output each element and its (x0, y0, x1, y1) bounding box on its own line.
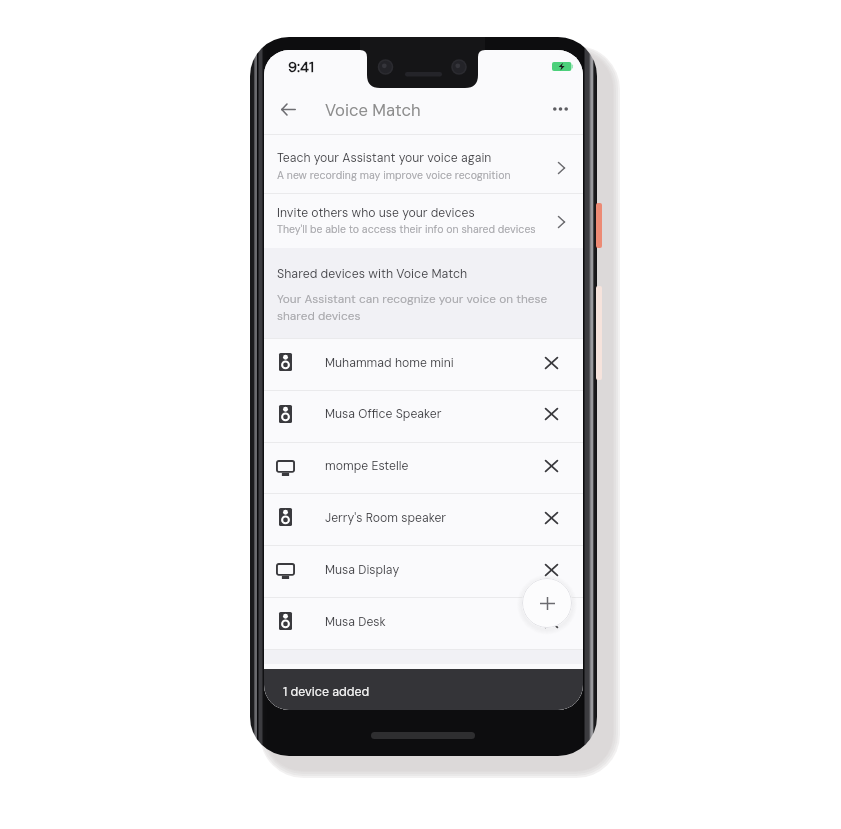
button[interactable]: Remove Musa Office Speaker (538, 401, 564, 427)
staticText: 1 device added (283, 684, 370, 700)
button[interactable] (264, 494, 583, 544)
staticText: Shared devices with Voice Match (277, 266, 468, 282)
staticText: Invite others who use your devices (277, 205, 475, 221)
staticText: Musa Office Speaker (325, 406, 442, 422)
staticText: Teach your Assistant your voice again (277, 150, 492, 166)
staticText: Voice Match (325, 100, 421, 122)
button[interactable] (264, 137, 583, 193)
button[interactable]: Add device (522, 578, 572, 628)
button[interactable]: Remove Jerry's Room speaker (538, 505, 564, 531)
button[interactable] (264, 391, 583, 441)
staticText: They'll be able to access their info on … (277, 223, 536, 237)
button[interactable] (264, 194, 583, 248)
staticText: Your Assistant can recognize your voice … (277, 291, 567, 324)
button[interactable] (264, 546, 583, 596)
button[interactable]: Remove Musa Display (538, 557, 564, 583)
staticText: 9:41 (288, 58, 314, 77)
button[interactable]: Remove Muhammad home mini (538, 350, 564, 376)
staticText: Musa Display (325, 562, 400, 578)
button[interactable]: Remove Musa Desk (538, 609, 564, 635)
button[interactable] (264, 598, 583, 648)
staticText: Jerry's Room speaker (325, 510, 447, 526)
button[interactable] (264, 339, 583, 389)
staticText: Muhammad home mini (325, 355, 454, 371)
button[interactable]: Back (272, 93, 304, 125)
button[interactable] (264, 443, 583, 493)
staticText: Musa Desk (325, 614, 386, 630)
staticText: mompe Estelle (325, 458, 409, 474)
button[interactable]: More options (544, 93, 576, 125)
button[interactable]: Remove mompe Estelle (538, 453, 564, 479)
staticText: A new recording may improve voice recogn… (277, 169, 511, 183)
